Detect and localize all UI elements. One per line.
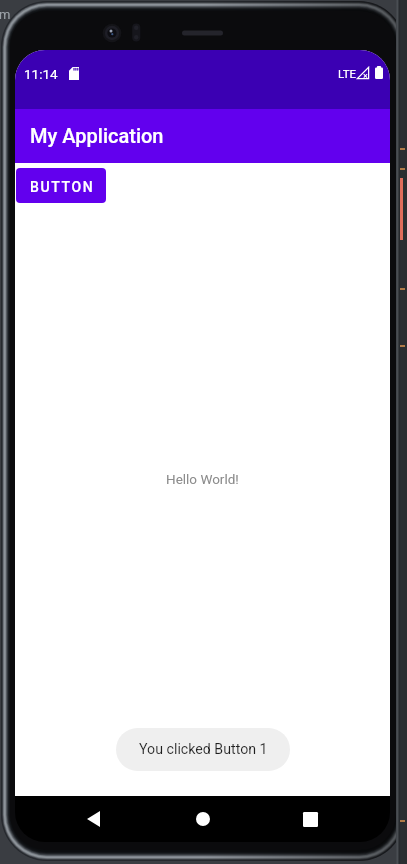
button[interactable]: Home <box>179 796 227 842</box>
button[interactable]: Recents <box>286 796 334 842</box>
staticText: BUTTON <box>30 179 95 195</box>
staticText: LTE <box>338 67 357 80</box>
button[interactable]: Back <box>69 796 117 842</box>
staticText: Hello World! <box>166 471 239 487</box>
staticText: You clicked Button 1 <box>139 741 268 758</box>
staticText: 11:14 <box>24 66 58 82</box>
staticText: My Application <box>30 124 164 147</box>
staticText: m <box>0 7 11 22</box>
button[interactable]: BUTTON <box>16 168 106 203</box>
